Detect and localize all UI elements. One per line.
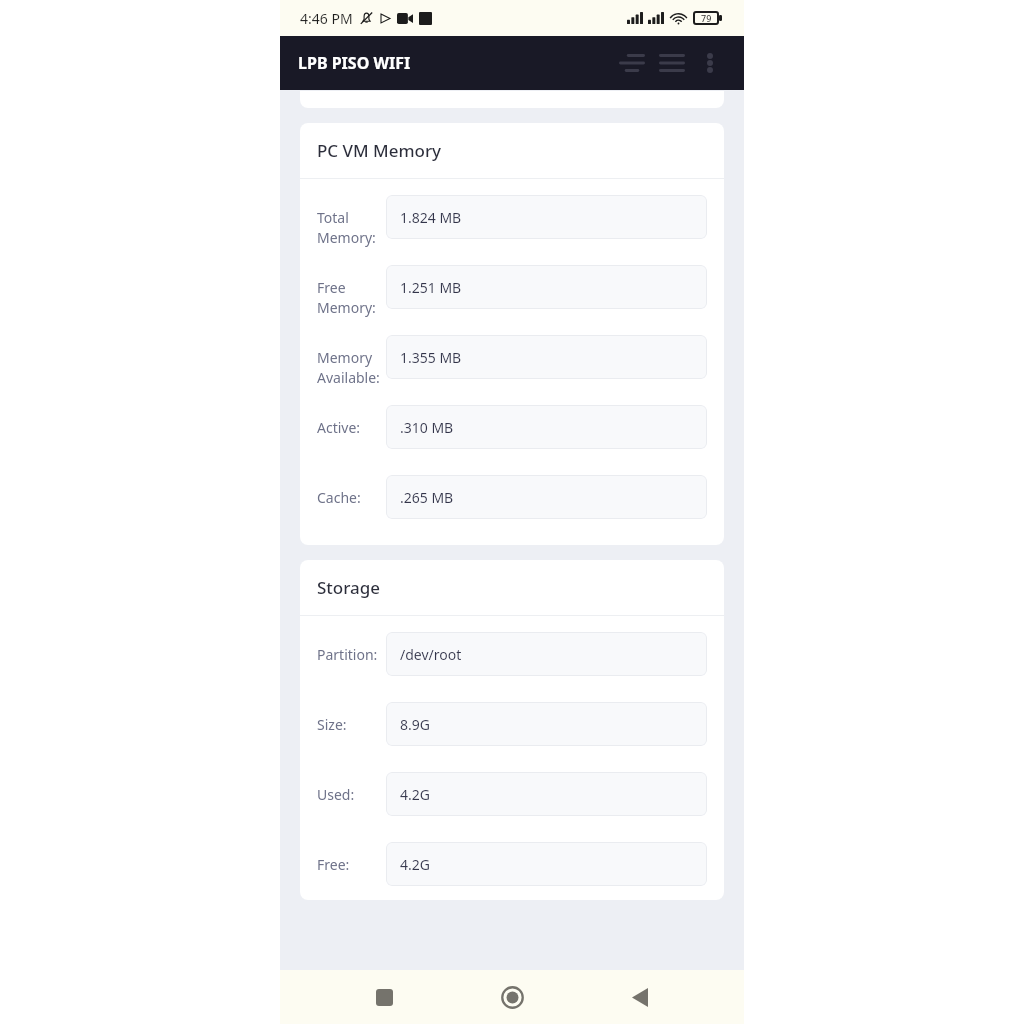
button[interactable]: Partition: [317, 632, 707, 676]
staticText: 4.2G [400, 855, 430, 874]
button[interactable]: Cache: [317, 475, 707, 519]
staticText: .310 MB [400, 418, 454, 437]
staticText: Size: [317, 715, 347, 734]
staticText: Total Memory: [317, 208, 376, 248]
staticText: LPB PISO WIFI [298, 52, 411, 74]
button[interactable]: Memory Available: [317, 335, 707, 379]
staticText: Partition: [317, 645, 378, 664]
staticText: Free Memory: [317, 278, 376, 318]
button[interactable]: Size: [317, 702, 707, 746]
button[interactable]: More options [692, 45, 728, 81]
staticText: 79 [701, 12, 712, 24]
button[interactable]: Free Memory: [317, 265, 707, 309]
button[interactable]: Home [488, 973, 536, 1021]
staticText: Free: [317, 855, 350, 874]
button[interactable]: Recents [360, 973, 408, 1021]
button[interactable]: Used: [317, 772, 707, 816]
staticText: Memory Available: [317, 348, 380, 388]
staticText: Storage [317, 576, 381, 599]
button[interactable]: Total Memory: [317, 195, 707, 239]
button[interactable]: Menu [652, 43, 692, 83]
button[interactable]: Sort [612, 43, 652, 83]
staticText: /dev/root [400, 645, 462, 664]
staticText: Cache: [317, 488, 361, 507]
staticText: 1.824 MB [400, 208, 462, 227]
staticText: .265 MB [400, 488, 454, 507]
staticText: PC VM Memory [317, 139, 442, 162]
staticText: 4.2G [400, 785, 430, 804]
button[interactable]: Back [616, 973, 664, 1021]
staticText: 4:46 PM [300, 9, 353, 28]
staticText: 8.9G [400, 715, 430, 734]
button[interactable]: Active: [317, 405, 707, 449]
button[interactable]: Free: [317, 842, 707, 886]
staticText: 1.355 MB [400, 348, 462, 367]
staticText: Active: [317, 418, 361, 437]
staticText: Used: [317, 785, 355, 804]
staticText: 1.251 MB [400, 278, 462, 297]
